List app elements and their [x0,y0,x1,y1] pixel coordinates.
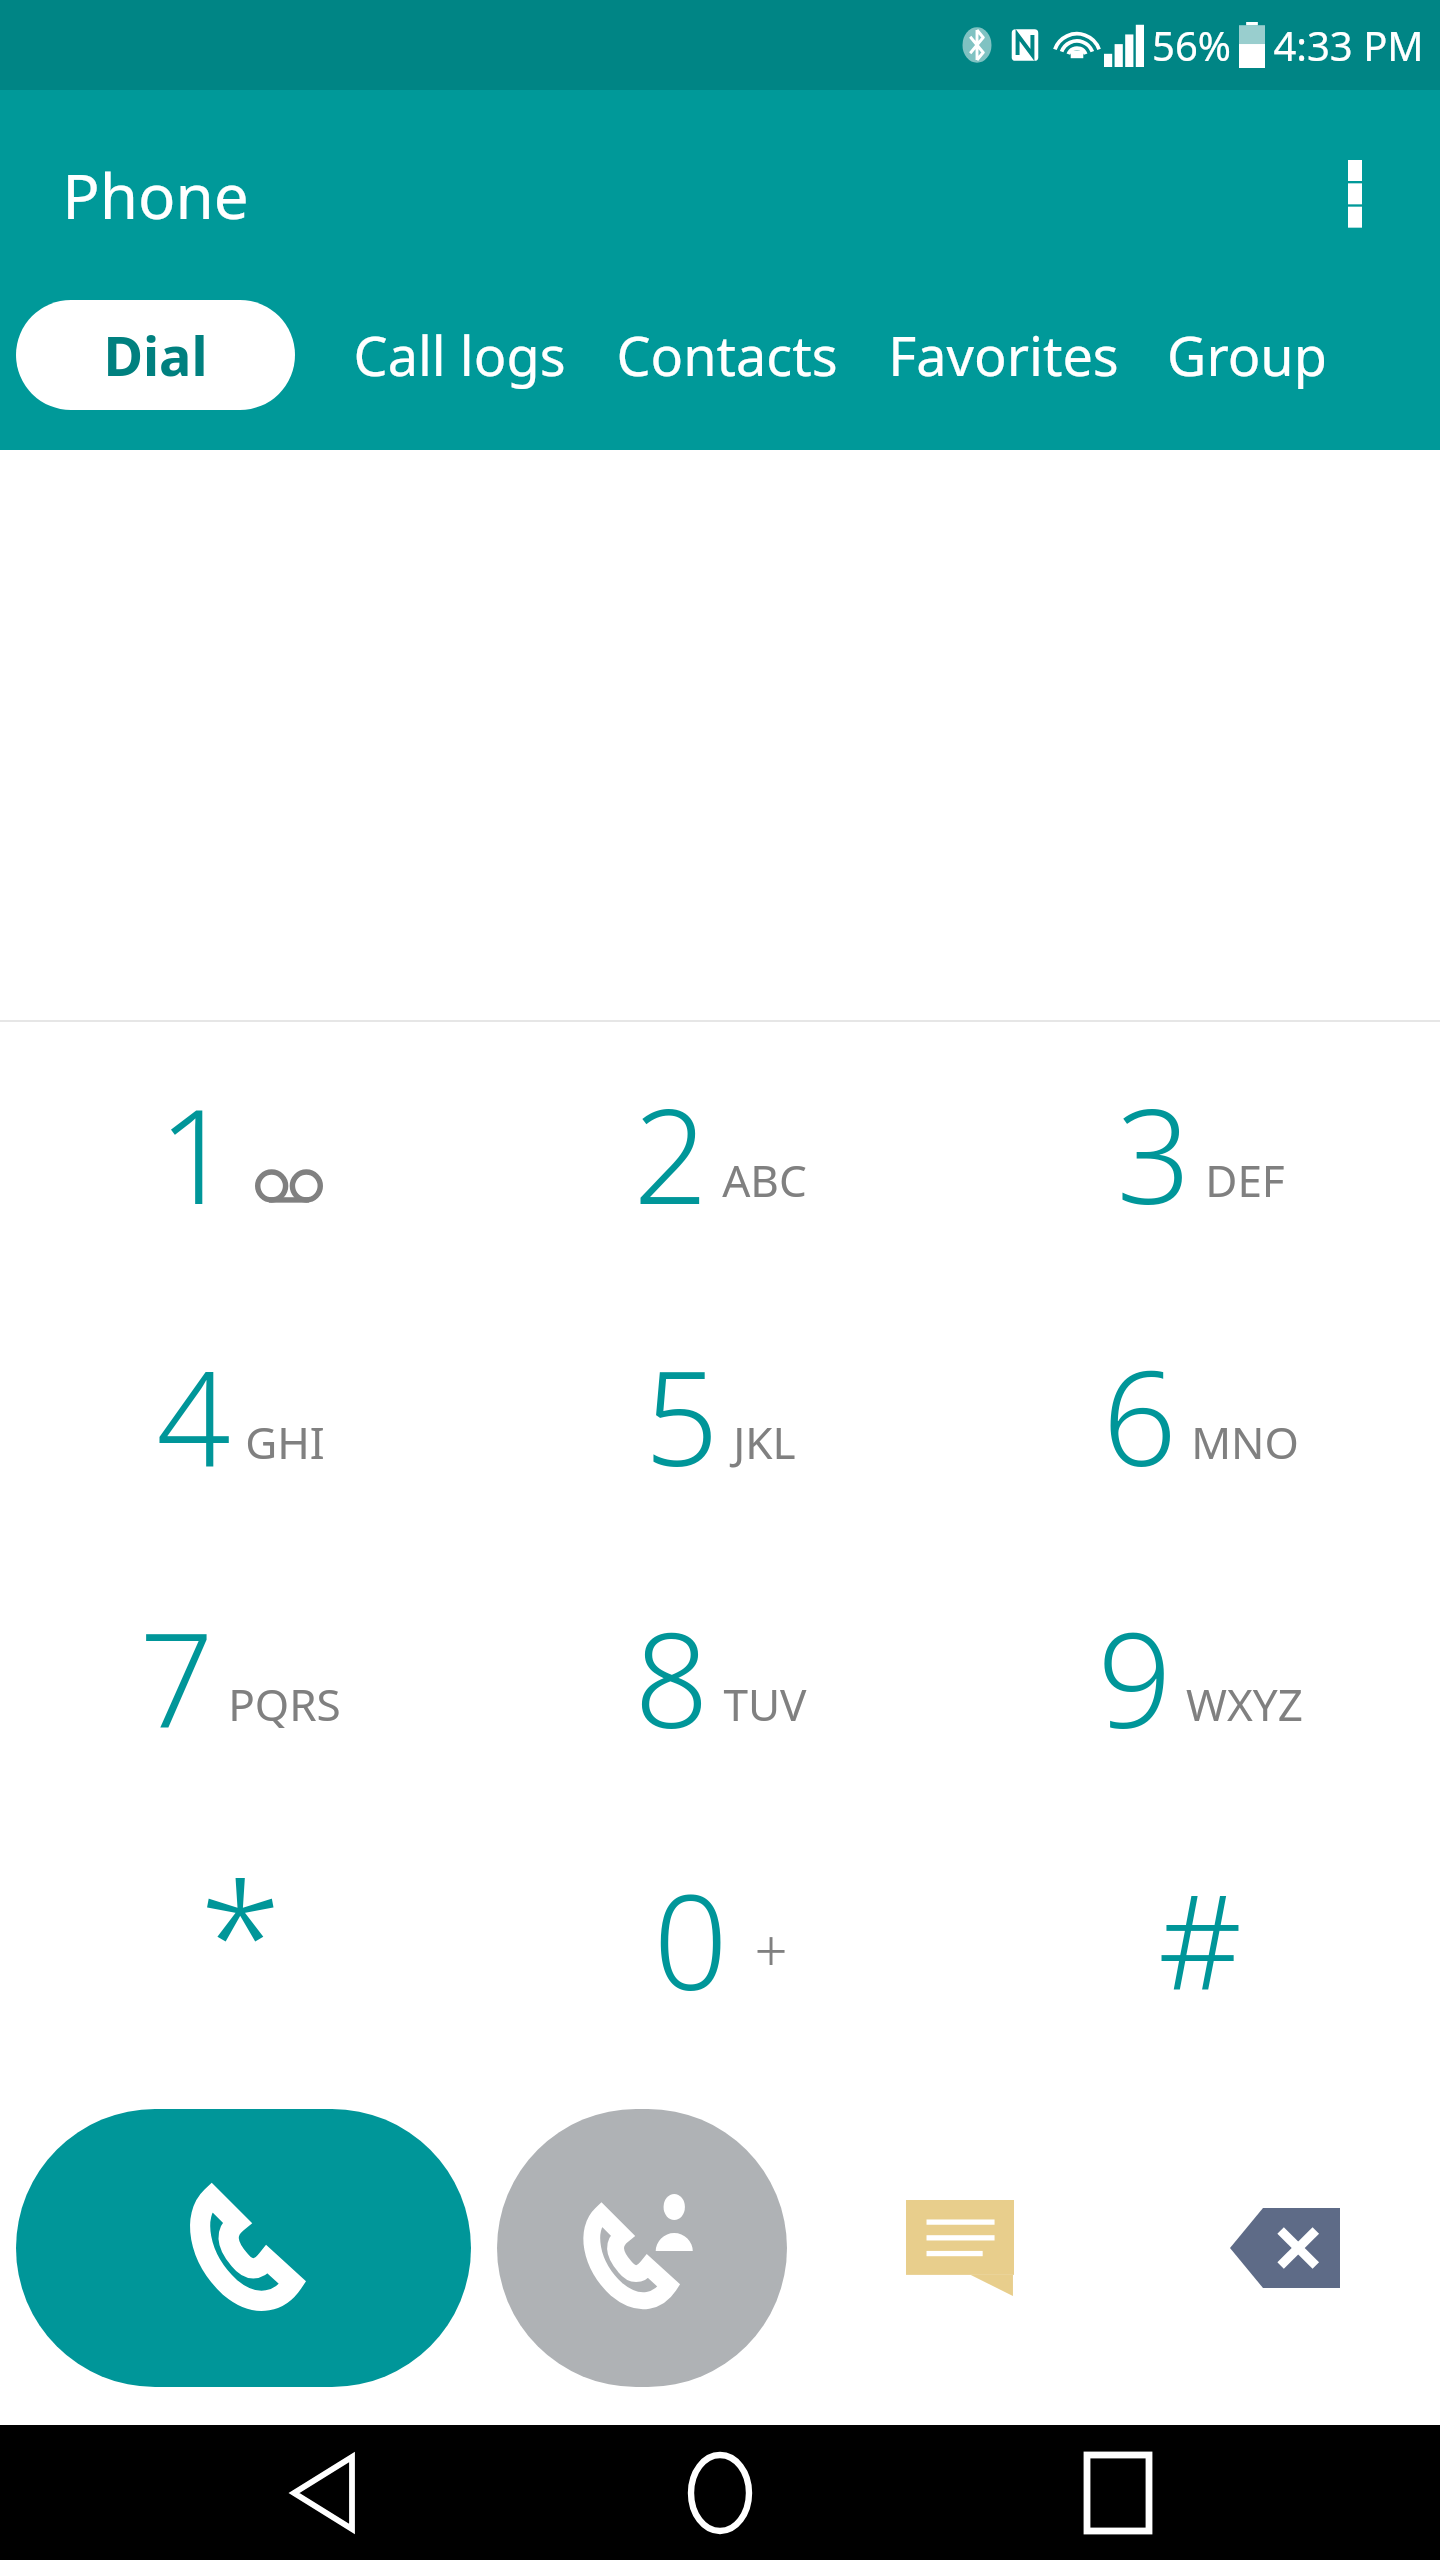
button[interactable]: Dial [16,300,295,410]
staticText: WXYZ [1186,1674,1303,1734]
staticText: 2 [633,1065,708,1242]
button[interactable]: 8 [480,1546,960,1808]
button[interactable]: 0 [480,1808,960,2070]
staticText: DEF [1205,1150,1285,1210]
button[interactable]: 3 [960,1022,1440,1284]
staticText: 8 [634,1589,709,1766]
button[interactable]: Contacts [616,300,838,410]
staticText: 9 [1097,1589,1172,1766]
button[interactable]: Call with contact [497,2109,787,2387]
staticText: 7 [139,1589,214,1766]
staticText: 1 [158,1065,233,1242]
staticText: 56% [1152,18,1231,72]
staticText: * [199,1831,282,2035]
button[interactable]: # [960,1808,1440,2070]
staticText: Dial [103,318,208,392]
staticText: JKL [733,1412,796,1472]
staticText: + [754,1910,788,1989]
staticText: Group [1167,318,1327,392]
button[interactable]: * [0,1808,480,2070]
staticText: 4:33 PM [1273,18,1424,72]
button[interactable]: Home [645,2425,795,2560]
button[interactable]: 9 [960,1546,1440,1808]
staticText: 3 [1116,1065,1191,1242]
button[interactable]: Group [1167,300,1327,410]
staticText: PQRS [228,1674,341,1734]
staticText: ABC [722,1150,807,1210]
button[interactable]: 1 [0,1022,480,1284]
staticText: 0 [653,1851,728,2028]
button[interactable]: Message [865,2153,1055,2343]
button[interactable]: 5 [480,1284,960,1546]
staticText: Favorites [888,318,1119,392]
button[interactable]: 4 [0,1284,480,1546]
staticText: TUV [723,1674,807,1734]
button[interactable]: Recent apps [1043,2425,1193,2560]
button[interactable]: 2 [480,1022,960,1284]
button[interactable]: More options [1300,140,1410,250]
staticText: 4 [156,1327,231,1504]
button[interactable]: Call logs [353,300,566,410]
staticText: 5 [644,1327,719,1504]
staticText: MNO [1191,1412,1299,1472]
staticText: Contacts [616,318,838,392]
staticText: Call logs [353,318,566,392]
button[interactable]: Call [16,2109,471,2387]
button[interactable]: 6 [960,1284,1440,1546]
staticText: GHI [245,1412,325,1472]
staticText: Phone [62,153,249,237]
staticText: 6 [1102,1327,1177,1504]
button[interactable]: Back [248,2425,398,2560]
button[interactable]: Backspace [1190,2153,1380,2343]
button[interactable]: 7 [0,1546,480,1808]
staticText: # [1158,1851,1242,2028]
button[interactable]: Favorites [888,300,1119,410]
